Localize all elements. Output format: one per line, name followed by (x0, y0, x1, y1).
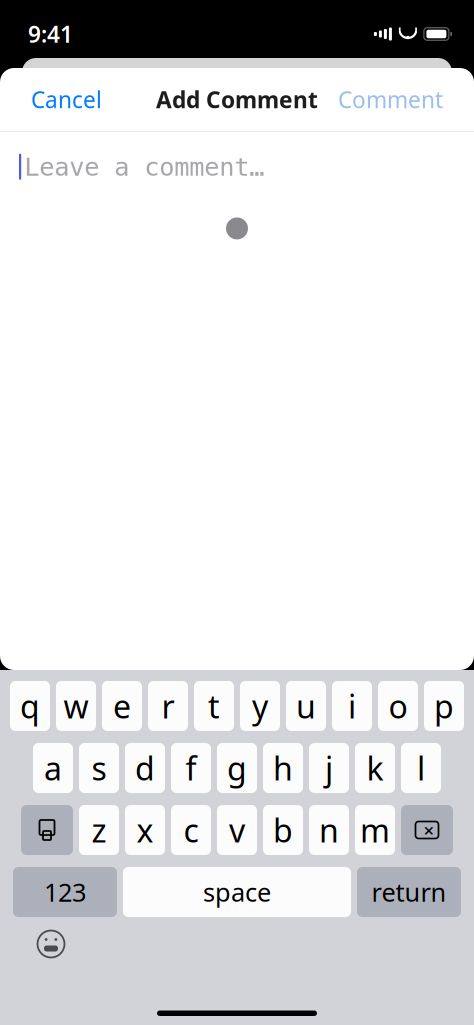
staticText: d (135, 747, 155, 789)
button[interactable]: i (332, 681, 372, 731)
button[interactable]: a (33, 743, 73, 793)
staticText: v (229, 809, 245, 851)
staticText: h (273, 747, 293, 789)
button[interactable]: r (148, 681, 188, 731)
button[interactable]: t (194, 681, 234, 731)
staticText: t (208, 685, 220, 727)
button[interactable]: w (56, 681, 96, 731)
button[interactable]: k (355, 743, 395, 793)
button[interactable]: Delete (401, 805, 453, 855)
button[interactable]: x (125, 805, 165, 855)
staticText: Comment (338, 84, 443, 114)
button[interactable]: 123 (13, 867, 117, 917)
staticText: Leave a comment… (24, 153, 264, 181)
button[interactable]: Comment (324, 74, 457, 124)
button[interactable]: j (309, 743, 349, 793)
button[interactable]: n (309, 805, 349, 855)
button[interactable]: p (424, 681, 464, 731)
button[interactable]: return (357, 867, 461, 917)
button[interactable]: m (355, 805, 395, 855)
staticText: p (434, 685, 454, 727)
staticText: f (185, 747, 196, 789)
button[interactable]: Shift (21, 805, 73, 855)
staticText: return (371, 875, 446, 909)
staticText: k (366, 747, 383, 789)
button[interactable]: l (401, 743, 441, 793)
staticText: 9:41 (28, 19, 73, 49)
staticText: x (136, 809, 153, 851)
staticText: n (319, 809, 339, 851)
button[interactable]: space (123, 867, 351, 917)
staticText: 123 (44, 875, 86, 909)
staticText: r (161, 685, 174, 727)
staticText: b (273, 809, 293, 851)
button[interactable]: Cancel (17, 74, 116, 124)
staticText: Cancel (31, 84, 102, 114)
button[interactable]: y (240, 681, 280, 731)
button[interactable]: e (102, 681, 142, 731)
staticText: a (44, 747, 62, 789)
staticText: z (91, 809, 106, 851)
button[interactable]: c (171, 805, 211, 855)
staticText: l (417, 747, 425, 789)
button[interactable]: d (125, 743, 165, 793)
button[interactable]: o (378, 681, 418, 731)
button[interactable]: g (217, 743, 257, 793)
staticText: u (296, 685, 316, 727)
button[interactable]: s (79, 743, 119, 793)
staticText: Add Comment (156, 84, 318, 114)
button[interactable]: z (79, 805, 119, 855)
staticText: m (360, 809, 390, 851)
button[interactable]: f (171, 743, 211, 793)
button[interactable]: b (263, 805, 303, 855)
button[interactable]: Emoji (28, 923, 74, 965)
staticText: i (348, 685, 356, 727)
staticText: w (63, 685, 88, 727)
staticText: s (91, 747, 106, 789)
button[interactable]: u (286, 681, 326, 731)
button[interactable]: h (263, 743, 303, 793)
staticText: space (203, 875, 271, 909)
staticText: y (252, 685, 268, 727)
staticText: j (325, 747, 333, 789)
button[interactable]: v (217, 805, 257, 855)
staticText: × (423, 818, 434, 842)
staticText: o (388, 685, 407, 727)
staticText: c (183, 809, 198, 851)
staticText: e (113, 685, 131, 727)
button[interactable]: q (10, 681, 50, 731)
staticText: q (20, 685, 40, 727)
staticText: g (227, 747, 247, 789)
